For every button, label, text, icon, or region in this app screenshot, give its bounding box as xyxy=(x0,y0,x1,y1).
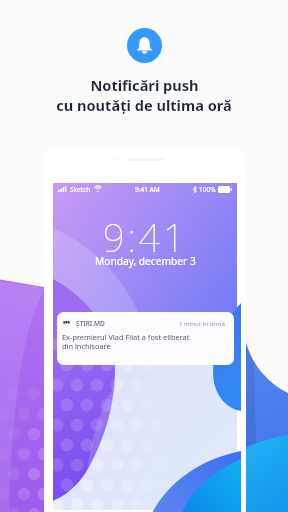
staticText: Ex-premierul Vlad Filat a fost eliberat … xyxy=(62,332,190,351)
staticText: Notificări push xyxy=(90,75,199,95)
staticText: 9:41 xyxy=(103,211,188,263)
staticText: Monday, december 3 xyxy=(95,254,196,268)
button[interactable]: Notifications xyxy=(127,28,162,63)
staticText: ȘTIRI.MD xyxy=(76,319,105,328)
staticText: cu noutăți de ultima oră xyxy=(56,95,232,115)
staticText: 1 minut în urmă xyxy=(179,319,225,327)
button[interactable]: ȘTIRI.MD xyxy=(57,312,234,365)
staticText: 100% xyxy=(199,185,216,194)
staticText: 9:41 AM xyxy=(135,185,160,194)
staticText: Sketch xyxy=(70,185,91,194)
